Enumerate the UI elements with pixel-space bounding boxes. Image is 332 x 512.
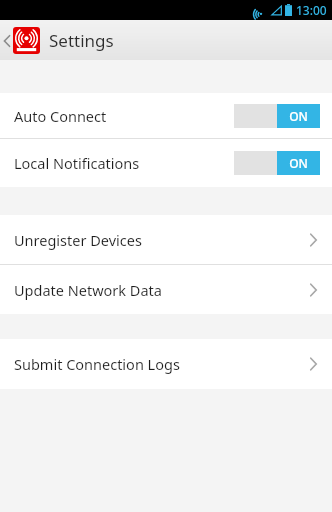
staticText: 13:00 xyxy=(296,2,327,18)
button[interactable]: On xyxy=(234,151,320,175)
staticText: ON xyxy=(289,155,308,171)
staticText: Submit Connection Logs xyxy=(14,354,180,374)
button[interactable]: Auto Connect xyxy=(0,93,332,138)
staticText: ON xyxy=(289,108,308,124)
staticText: Settings xyxy=(49,29,114,52)
button[interactable]: Back xyxy=(0,21,42,60)
button[interactable]: Update Network Data xyxy=(0,265,332,314)
button[interactable]: Local Notifications xyxy=(0,139,332,187)
staticText: Local Notifications xyxy=(14,153,140,173)
button[interactable]: Submit Connection Logs xyxy=(0,339,332,389)
button[interactable]: On xyxy=(234,104,320,128)
staticText: Update Network Data xyxy=(14,280,162,300)
button[interactable]: Unregister Devices xyxy=(0,215,332,264)
staticText: Auto Connect xyxy=(14,106,107,126)
staticText: Unregister Devices xyxy=(14,230,142,250)
